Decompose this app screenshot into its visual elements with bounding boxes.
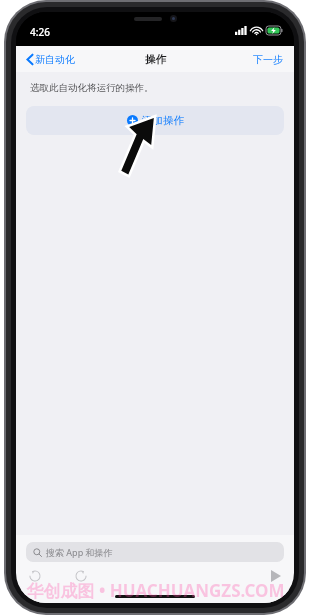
- button[interactable]: 添加操作: [26, 106, 284, 135]
- staticText: 4:26: [30, 25, 50, 39]
- button[interactable]: Play: [269, 568, 283, 584]
- button[interactable]: 新自动化: [24, 50, 78, 69]
- button[interactable]: Redo: [73, 568, 89, 584]
- staticText: 搜索 App 和操作: [46, 546, 113, 558]
- button[interactable]: Undo: [27, 568, 43, 584]
- staticText: 下一步: [253, 53, 283, 66]
- staticText: 操作: [145, 53, 166, 66]
- staticText: 选取此自动化将运行的操作。: [30, 82, 154, 94]
- staticText: 添加操作: [142, 114, 184, 127]
- staticText: 华创成图 • HUACHUANGZS.COM: [26, 579, 285, 602]
- button[interactable]: 搜索 App 和操作: [26, 542, 284, 562]
- button[interactable]: 下一步: [250, 50, 286, 69]
- staticText: 新自动化: [35, 53, 75, 66]
